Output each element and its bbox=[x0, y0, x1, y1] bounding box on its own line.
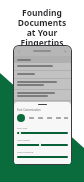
button[interactable] bbox=[28, 115, 34, 121]
button[interactable]: Search bbox=[63, 49, 68, 54]
button[interactable]: Selected font bbox=[17, 114, 25, 122]
staticText: Letter Spacing bbox=[17, 150, 34, 153]
button[interactable]: Back bbox=[17, 49, 22, 54]
staticText: Access historical texts that defined Ame… bbox=[13, 53, 71, 65]
staticText: Font Customization bbox=[17, 108, 41, 112]
button[interactable]: Letter Spacing bbox=[17, 150, 68, 159]
button[interactable] bbox=[55, 115, 61, 121]
button[interactable]: Font Size bbox=[17, 126, 68, 135]
staticText: Line Height bbox=[17, 138, 30, 141]
button[interactable] bbox=[37, 115, 43, 121]
staticText: Founding Documents at Your Fingertips bbox=[5, 7, 79, 49]
button[interactable] bbox=[46, 115, 52, 121]
button[interactable]: Line Height bbox=[17, 138, 68, 147]
staticText: Font Size bbox=[17, 126, 28, 129]
button[interactable] bbox=[64, 115, 68, 121]
